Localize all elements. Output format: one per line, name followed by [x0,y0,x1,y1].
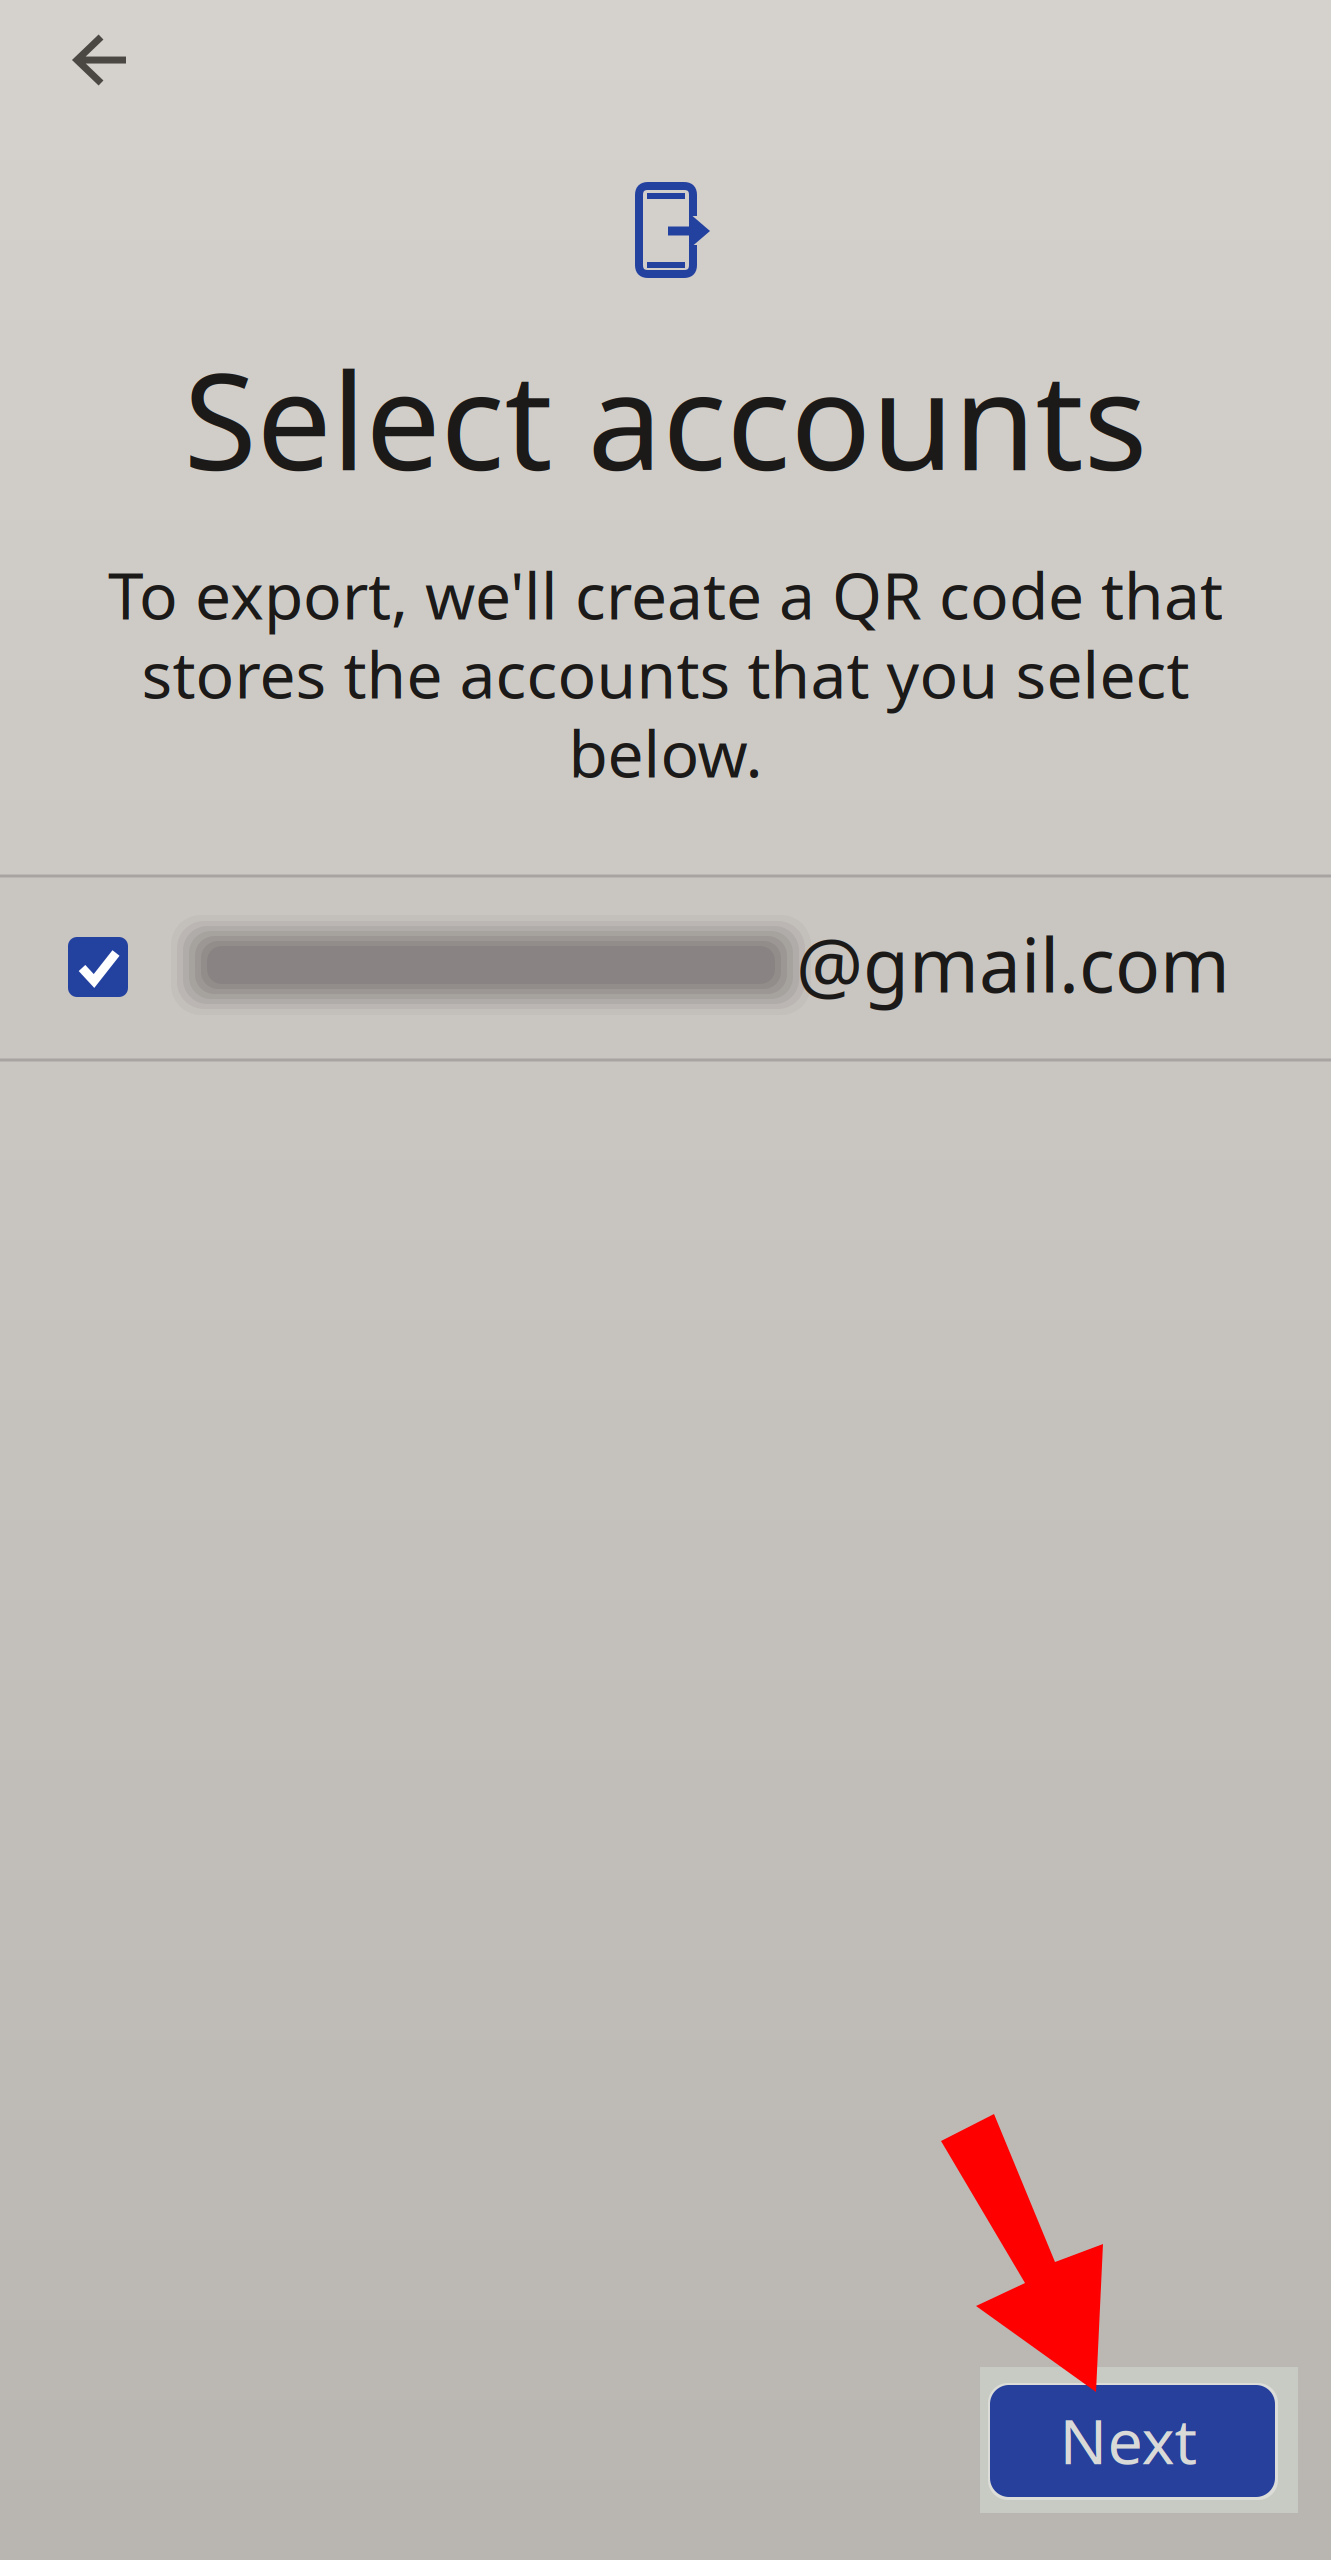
staticText: @gmail.com [796,914,1230,1013]
staticText: Select accounts [183,330,1147,507]
staticText: To export, we'll create a QR code that [108,552,1223,637]
staticText: stores the accounts that you select [141,631,1189,716]
button[interactable]: Back [0,0,132,124]
staticText: Next [1059,2398,1197,2482]
button[interactable]: Next [0,0,1298,2513]
button[interactable]: @gmail.com [0,0,1331,1060]
staticText: below. [568,710,762,795]
